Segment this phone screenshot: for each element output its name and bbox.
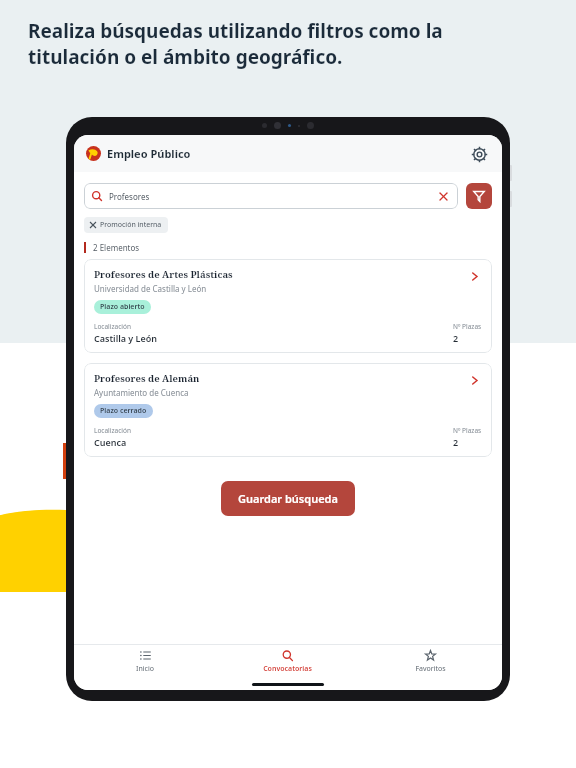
staticText: Ayuntamiento de Cuenca bbox=[94, 387, 189, 398]
button[interactable]: Borrar bbox=[436, 189, 450, 203]
button[interactable]: Guardar búsqueda bbox=[221, 481, 355, 516]
staticText: Inicio bbox=[136, 664, 154, 674]
staticText: Nº Plazas bbox=[453, 426, 482, 435]
staticText: Favoritos bbox=[415, 664, 446, 674]
button[interactable]: Inicio bbox=[74, 645, 216, 679]
button[interactable]: Profesores de Artes Plásticas bbox=[84, 259, 492, 353]
other: Ver detalle bbox=[466, 268, 482, 284]
staticText: Profesores de Artes Plásticas bbox=[94, 268, 233, 281]
staticText: Cuenca bbox=[94, 436, 127, 448]
staticText: Profesores bbox=[109, 191, 150, 202]
staticText: 2 bbox=[453, 332, 459, 344]
staticText: Plazo abierto bbox=[100, 302, 145, 312]
button[interactable]: Profesores de Alemán bbox=[84, 363, 492, 457]
staticText: Guardar búsqueda bbox=[238, 491, 338, 506]
button[interactable]: Ajustes bbox=[468, 143, 490, 165]
staticText: Profesores de Alemán bbox=[94, 372, 200, 385]
staticText: Empleo Público bbox=[107, 146, 191, 161]
button[interactable]: Filtros bbox=[466, 183, 492, 209]
staticText: Localización bbox=[94, 426, 131, 435]
button[interactable]: Profesores bbox=[84, 183, 458, 209]
staticText: Universidad de Castilla y León bbox=[94, 283, 207, 294]
staticText: Plazo cerrado bbox=[100, 406, 147, 416]
staticText: Nº Plazas bbox=[453, 322, 482, 331]
staticText: 2 bbox=[453, 436, 459, 448]
other: Ver detalle bbox=[466, 372, 482, 388]
staticText: 2 Elementos bbox=[93, 242, 140, 253]
button[interactable]: Promoción interna bbox=[84, 217, 168, 233]
button[interactable]: Favoritos bbox=[359, 645, 502, 679]
staticText: Promoción interna bbox=[100, 220, 162, 230]
staticText: Realiza búsquedas utilizando filtros com… bbox=[28, 18, 443, 70]
staticText: Localización bbox=[94, 322, 131, 331]
staticText: Castilla y León bbox=[94, 332, 158, 344]
button[interactable]: Convocatorias bbox=[216, 645, 359, 679]
staticText: Convocatorias bbox=[263, 664, 312, 674]
